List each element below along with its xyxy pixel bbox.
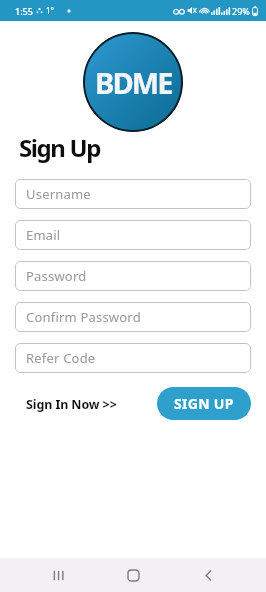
button[interactable]: Password [15, 261, 251, 291]
staticText: Refer Code [26, 349, 96, 367]
button[interactable]: SIGN UP [157, 387, 251, 420]
button[interactable]: Confirm Password [15, 302, 251, 332]
staticText: 29% [232, 5, 250, 17]
staticText: Email [26, 226, 61, 244]
button[interactable]: Back [191, 558, 225, 592]
staticText: BDME [95, 63, 172, 102]
staticText: Password [26, 267, 87, 285]
staticText: Confirm Password [26, 308, 141, 326]
button[interactable]: Refer Code [15, 343, 251, 373]
staticText: Username [26, 185, 91, 203]
button[interactable]: Sign In Now >> [20, 391, 123, 418]
button[interactable]: Recent apps [41, 558, 75, 592]
button[interactable]: Username [15, 179, 251, 209]
staticText: 1:55 [15, 5, 33, 17]
staticText: 1° [46, 5, 54, 16]
staticText: Sign Up [19, 131, 100, 164]
button[interactable]: Email [15, 220, 251, 250]
button[interactable]: Home [116, 558, 150, 592]
staticText: Sign In Now >> [26, 396, 117, 413]
staticText: SIGN UP [174, 394, 234, 413]
